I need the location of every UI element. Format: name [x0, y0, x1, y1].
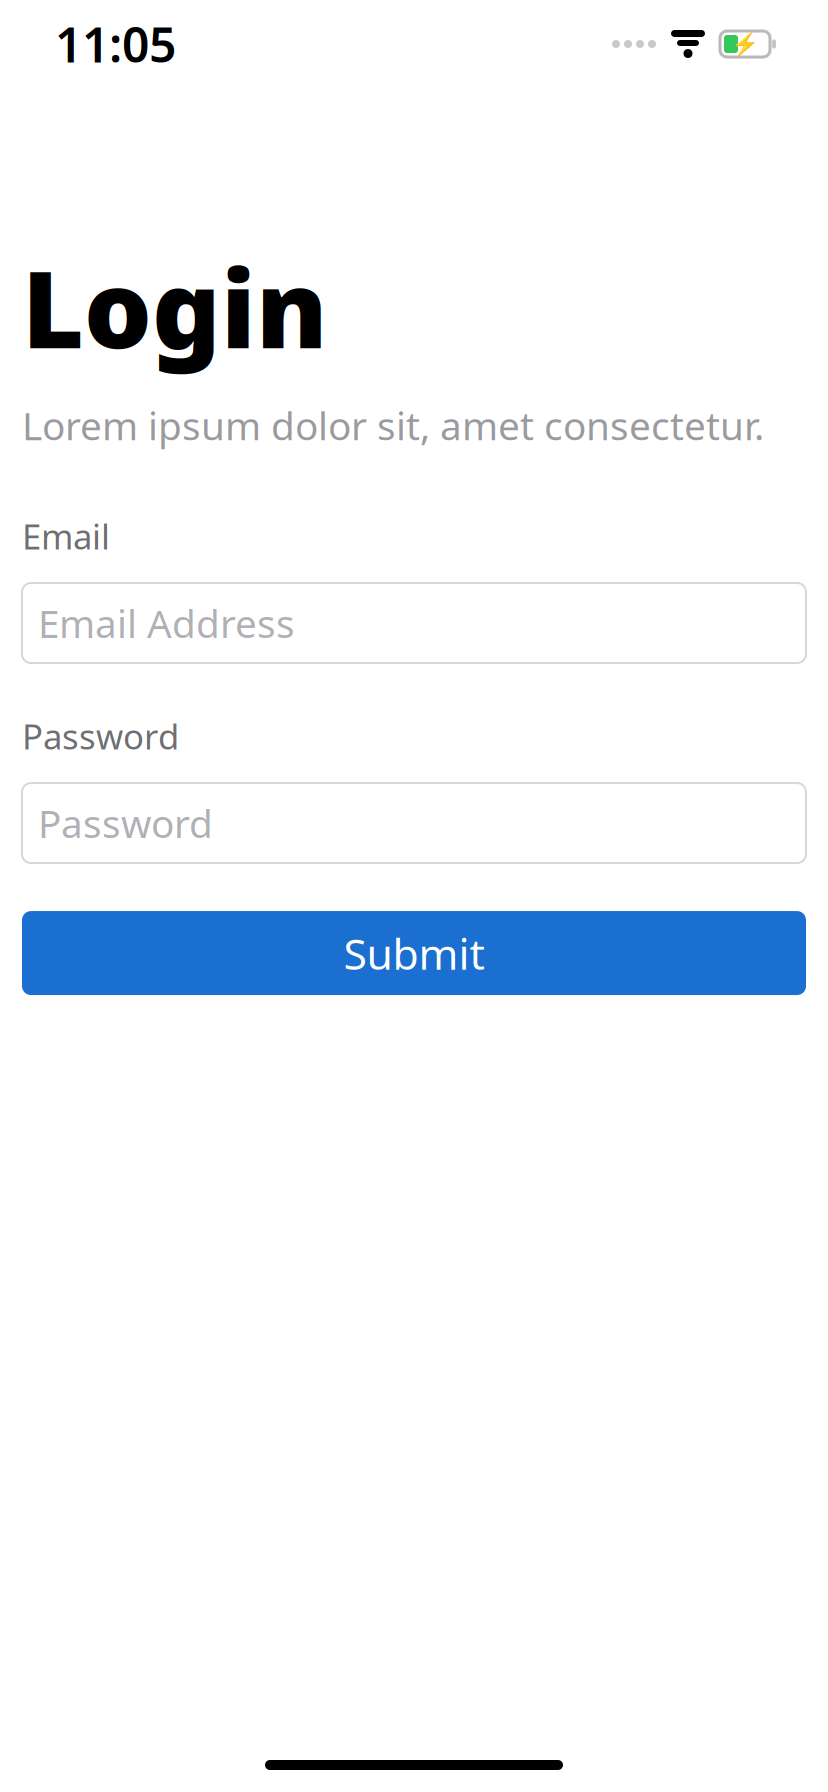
staticText: Email Address	[38, 597, 295, 649]
staticText: Lorem ipsum dolor sit, amet consectetur.	[22, 400, 764, 451]
button[interactable]: Password	[22, 783, 806, 863]
button[interactable]: Email Address	[22, 583, 806, 663]
staticText: Password	[22, 713, 179, 759]
staticText: Password	[38, 797, 213, 849]
staticText: 11:05	[55, 12, 176, 76]
staticText: Login	[22, 236, 327, 378]
staticText: Submit	[343, 925, 484, 981]
staticText: ⚡	[731, 31, 759, 57]
button[interactable]: Submit	[22, 911, 806, 995]
staticText: Email	[22, 513, 110, 559]
